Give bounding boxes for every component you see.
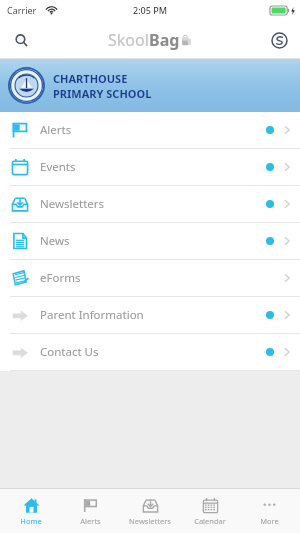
button[interactable]: Contact Us [0,334,300,371]
staticText: PRIMARY SCHOOL [53,86,152,101]
button[interactable]: Refresh [264,25,294,55]
button[interactable]: Calendar [181,489,239,533]
button[interactable]: CHARTHOUSE [0,59,300,112]
staticText: Carrier [7,4,37,16]
staticText: More [260,516,279,526]
button[interactable]: Alerts [61,489,119,533]
button[interactable]: News [0,223,300,260]
button[interactable]: Events [0,149,300,186]
staticText: Alerts [80,516,101,526]
staticText: Calendar [194,516,226,526]
staticText: News [40,233,70,249]
button[interactable]: Home [2,489,60,533]
staticText: Bag [149,29,180,51]
staticText: Parent Information [40,307,144,323]
staticText: Events [40,159,76,175]
staticText: Newsletters [129,516,171,526]
staticText: CHARTHOUSE [53,71,128,86]
staticText: Alerts [40,122,72,138]
button[interactable]: Search [6,25,36,55]
button[interactable]: Newsletters [0,186,300,223]
staticText: Skool [108,29,149,51]
staticText: Contact Us [40,344,99,360]
button[interactable]: eForms [0,260,300,297]
staticText: Newsletters [40,196,105,212]
staticText: 2:05 PM [133,4,167,16]
button[interactable]: Alerts [0,112,300,149]
button[interactable]: Parent Information [0,297,300,334]
staticText: eForms [40,270,81,286]
button[interactable]: Newsletters [121,489,179,533]
staticText: Home [20,516,42,526]
button[interactable]: More [240,489,298,533]
